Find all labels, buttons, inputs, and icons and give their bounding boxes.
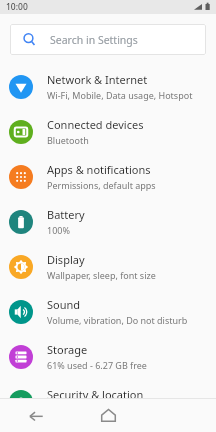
staticText: Network & Internet [47,72,148,87]
staticText: Display [47,252,85,267]
staticText: Screen lock, fingerprint [47,404,146,416]
button[interactable]: Connected devices [0,109,216,154]
staticText: Storage [47,342,88,357]
button[interactable]: Apps & notifications [0,154,216,199]
staticText: Security & location [47,387,144,402]
button[interactable]: Storage [0,334,216,379]
staticText: Permissions, default apps [47,179,156,191]
button[interactable]: Network & Internet [0,64,216,109]
staticText: Volume, vibration, Do not disturb [47,314,188,326]
staticText: Sound [47,297,81,312]
staticText: Bluetooth [47,134,89,146]
staticText: 10:00 [6,1,28,13]
button[interactable]: Display [0,244,216,289]
staticText: Apps & notifications [47,162,151,177]
staticText: 100% [47,224,70,236]
staticText: Wi-Fi, Mobile, Data usage, Hotspot [47,89,193,101]
staticText: Connected devices [47,117,144,132]
staticText: Battery [47,207,85,222]
button[interactable]: Security & location [0,379,216,424]
staticText: 61% used - 6.27 GB free [47,359,147,371]
button[interactable]: Home [72,399,144,432]
staticText: Search in Settings [50,33,138,47]
button[interactable]: Sound [0,289,216,334]
button[interactable]: Battery [0,199,216,244]
button[interactable]: Back [0,399,72,432]
button[interactable]: Search in Settings [10,24,206,55]
staticText: Wallpaper, sleep, font size [47,269,156,281]
